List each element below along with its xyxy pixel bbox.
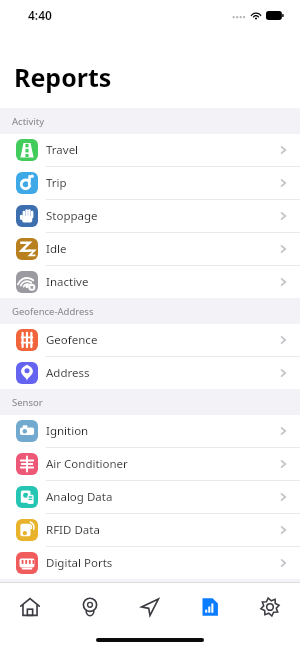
button[interactable]: Home [0, 584, 60, 630]
other: Open Trip [276, 176, 290, 190]
staticText: 4:40 [28, 7, 52, 23]
button[interactable]: Analog Data [0, 481, 300, 514]
staticText: Activity [12, 115, 45, 128]
staticText: Reports [14, 60, 112, 94]
button[interactable]: Travel [0, 134, 300, 167]
button[interactable]: Address [0, 357, 300, 389]
staticText: Air Conditioner [46, 456, 276, 472]
button[interactable]: Inactive [0, 266, 300, 298]
staticText: RFID Data [46, 522, 276, 538]
button[interactable]: Idle [0, 233, 300, 266]
other: Open Air Conditioner [276, 457, 290, 471]
staticText: Sensor [12, 396, 43, 409]
button[interactable]: Trip [0, 167, 300, 200]
button[interactable]: Reports [180, 584, 240, 630]
button[interactable]: Air Conditioner [0, 448, 300, 481]
button[interactable]: Stoppage [0, 200, 300, 233]
staticText: Stoppage [46, 208, 276, 224]
button[interactable]: Settings [240, 584, 300, 630]
button[interactable]: Places [60, 584, 120, 630]
staticText: Travel [46, 142, 276, 158]
other: Open RFID Data [276, 523, 290, 537]
button[interactable]: RFID Data [0, 514, 300, 547]
other: Open Ignition [276, 424, 290, 438]
button[interactable]: Navigate [120, 584, 180, 630]
staticText: Inactive [46, 274, 276, 290]
staticText: Address [46, 365, 276, 381]
button[interactable]: Geofence [0, 324, 300, 357]
other: Open Address [276, 366, 290, 380]
other: Open Analog Data [276, 490, 290, 504]
staticText: Digital Ports [46, 555, 276, 571]
staticText: Analog Data [46, 489, 276, 505]
staticText: Geofence [46, 332, 276, 348]
staticText: Ignition [46, 423, 276, 439]
button[interactable]: Digital Ports [0, 547, 300, 579]
staticText: Geofence-Address [12, 305, 94, 318]
staticText: Trip [46, 175, 276, 191]
other: Open Inactive [276, 275, 290, 289]
other: Open Geofence [276, 333, 290, 347]
other: Open Travel [276, 143, 290, 157]
button[interactable]: Ignition [0, 415, 300, 448]
other: Open Stoppage [276, 209, 290, 223]
other: Open Digital Ports [276, 556, 290, 570]
other: Open Idle [276, 242, 290, 256]
staticText: Idle [46, 241, 276, 257]
